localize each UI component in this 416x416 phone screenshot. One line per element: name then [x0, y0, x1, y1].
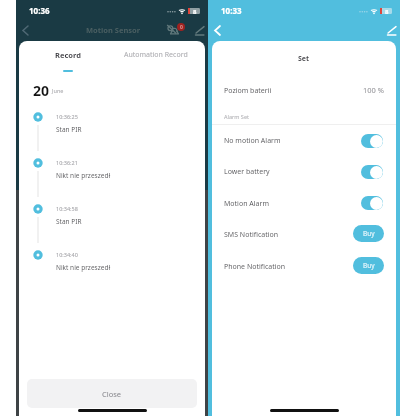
staticText: 10:36:21 [56, 159, 78, 166]
button[interactable]: Toggle [361, 134, 383, 148]
staticText: 8 [385, 8, 389, 14]
staticText: Nikt nie przeszedł [56, 263, 111, 272]
button[interactable]: Lower battery [212, 162, 396, 182]
button[interactable]: Buy [353, 225, 384, 242]
button[interactable]: Close [27, 379, 197, 408]
staticText: 8 [193, 8, 197, 14]
staticText: 10:36:25 [56, 113, 78, 120]
button[interactable]: SMS Notification [212, 225, 396, 245]
button[interactable]: Notifications [164, 20, 184, 40]
staticText: Stan PIR [56, 125, 82, 134]
button[interactable]: Phone Notification [212, 257, 396, 277]
staticText: Motion Sensor [86, 25, 141, 35]
button[interactable]: Edit [190, 21, 209, 40]
staticText: Lower battery [224, 167, 270, 177]
staticText: Stan PIR [56, 217, 82, 226]
staticText: 10:34:40 [56, 251, 78, 258]
staticText: 20 [33, 81, 50, 100]
button[interactable]: Edit [382, 21, 401, 40]
staticText: Close [102, 389, 122, 399]
button[interactable]: Buy [353, 257, 384, 274]
button[interactable]: Back [209, 21, 229, 41]
staticText: Phone Notification [224, 262, 286, 272]
staticText: June [52, 87, 64, 94]
button[interactable]: No motion Alarm [212, 131, 396, 151]
staticText: Poziom baterii [224, 86, 272, 96]
button[interactable]: Motion Alarm [212, 194, 396, 214]
staticText: No motion Alarm [224, 136, 281, 146]
button[interactable]: Toggle [361, 196, 383, 210]
button[interactable] [115, 46, 195, 68]
staticText: 10:33 [221, 5, 242, 16]
button[interactable]: Toggle [361, 165, 383, 179]
staticText: 10:36 [29, 5, 50, 16]
staticText: Record [55, 50, 81, 60]
button[interactable] [40, 46, 95, 76]
staticText: Motion Alarm [224, 199, 269, 209]
staticText: Nikt nie przeszedł [56, 171, 111, 180]
staticText: 10:34:58 [56, 205, 78, 212]
staticText: SMS Notification [224, 230, 279, 240]
staticText: Alarm Set [224, 113, 249, 120]
button[interactable]: Back [17, 21, 37, 41]
staticText: Buy [363, 229, 375, 238]
staticText: 0 [180, 24, 183, 31]
staticText: Buy [363, 261, 375, 270]
staticText: Automation Record [124, 50, 188, 60]
staticText: 100 % [363, 85, 385, 95]
staticText: Set [298, 54, 310, 64]
